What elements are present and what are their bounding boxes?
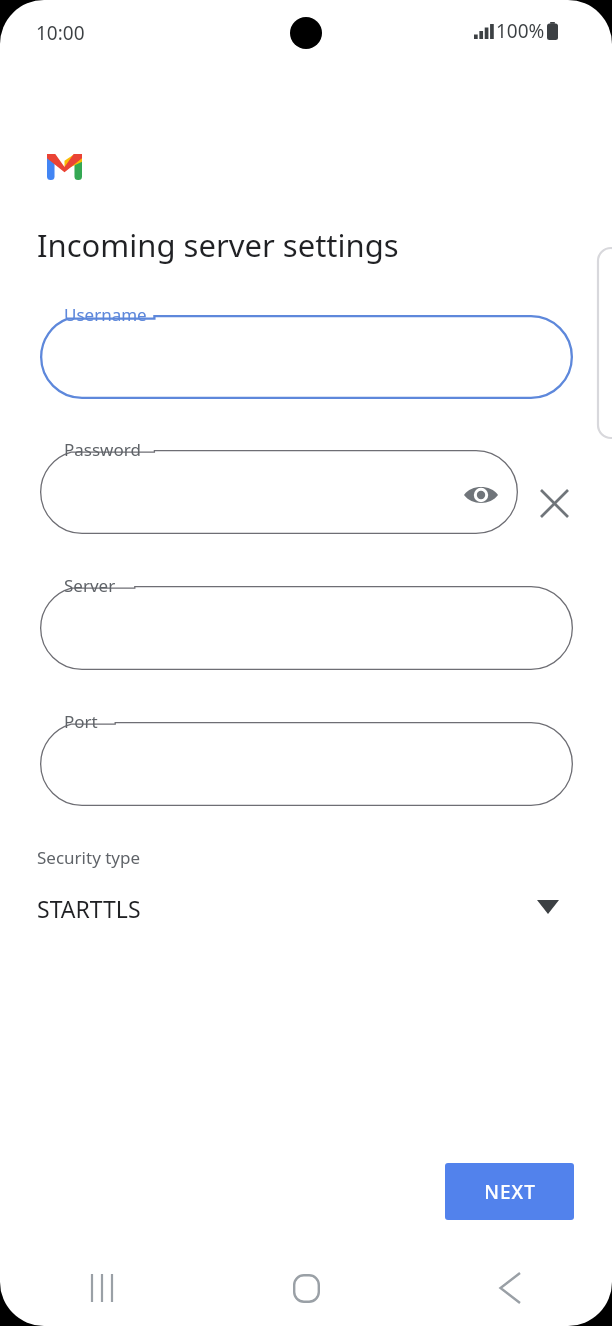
button[interactable] [40, 450, 518, 534]
staticText: NEXT [484, 1179, 536, 1205]
staticText: STARTTLS [37, 893, 141, 924]
button[interactable] [40, 586, 573, 670]
staticText: 100% [496, 18, 545, 44]
button[interactable]: Recent apps [0, 1250, 204, 1326]
staticText: Port [64, 710, 98, 733]
staticText: Password [64, 438, 141, 461]
staticText: Server [64, 574, 116, 597]
button[interactable] [40, 722, 573, 806]
staticText: Username [64, 303, 147, 326]
button[interactable]: NEXT [445, 1163, 574, 1220]
staticText: 10:00 [36, 20, 85, 46]
button[interactable]: Clear [532, 481, 576, 525]
button[interactable]: Home [204, 1250, 408, 1326]
staticText: Incoming server settings [37, 224, 399, 266]
button[interactable]: Security type [0, 838, 612, 938]
button[interactable]: Show password [458, 472, 504, 518]
button[interactable] [40, 315, 573, 399]
staticText: Security type [37, 846, 141, 869]
button[interactable]: Back [408, 1250, 612, 1326]
